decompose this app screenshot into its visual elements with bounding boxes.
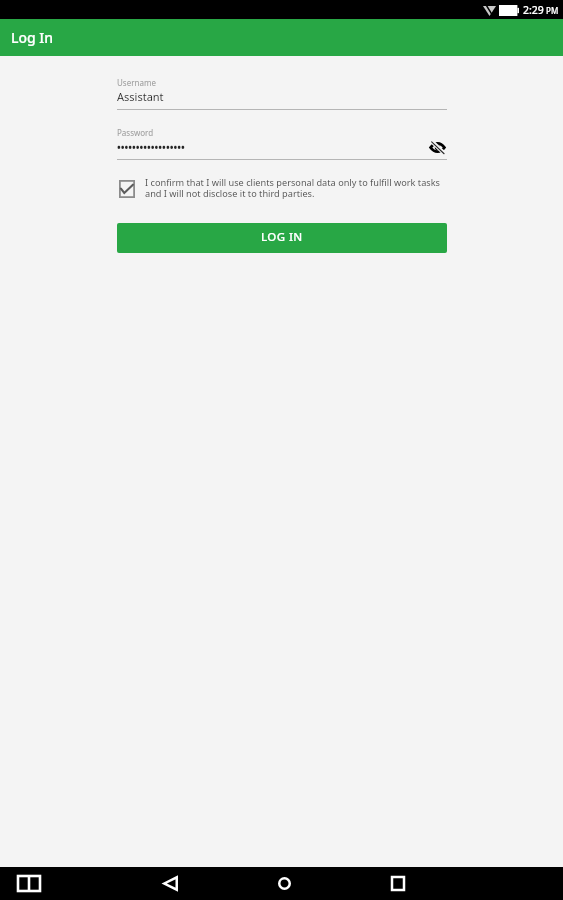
staticText: Password	[117, 127, 154, 138]
button[interactable]: Split screen	[12, 867, 45, 900]
staticText: Assistant	[117, 89, 164, 104]
button[interactable]: Back	[146, 867, 194, 900]
button[interactable]: Recents	[374, 867, 422, 900]
staticText: ••••••••••••••••••	[117, 140, 185, 154]
button[interactable]: Home	[260, 867, 308, 900]
button[interactable]: I confirm that I will use clients person…	[117, 173, 447, 205]
button[interactable]: LOG IN	[117, 223, 447, 253]
button[interactable]: Show password	[425, 136, 447, 158]
staticText: PM	[546, 5, 559, 16]
staticText: Username	[117, 77, 156, 88]
staticText: Log In	[11, 28, 54, 47]
staticText: I confirm that I will use clients person…	[145, 176, 447, 200]
staticText: LOG IN	[261, 229, 303, 245]
staticText: 2:29	[523, 3, 544, 17]
